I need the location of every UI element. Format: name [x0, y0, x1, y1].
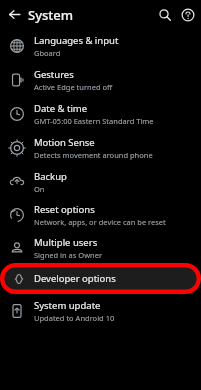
button[interactable]: Date & time [0, 97, 201, 131]
staticText: Gestures [34, 68, 74, 81]
button[interactable]: Languages & input [0, 29, 201, 63]
staticText: Updated to Android 10 [34, 313, 115, 323]
button[interactable]: Developer options [3, 264, 198, 293]
staticText: System update [34, 299, 101, 312]
staticText: Active Edge turned off [34, 82, 113, 92]
staticText: Reset options [34, 203, 95, 216]
button[interactable]: Reset options [0, 198, 201, 232]
staticText: Gboard [34, 48, 61, 58]
button[interactable]: Back [0, 0, 28, 29]
staticText: Date & time [34, 102, 88, 115]
staticText: Languages & input [34, 34, 119, 47]
staticText: GMT-05:00 Eastern Standard Time [34, 116, 154, 126]
staticText: Detects movement around phone [34, 150, 153, 160]
staticText: Backup [34, 170, 67, 183]
button[interactable]: Multiple users [0, 232, 201, 263]
staticText: Developer options [34, 272, 116, 285]
staticText: Signed in as Owner [34, 250, 103, 260]
staticText: Motion Sense [34, 136, 95, 149]
button[interactable]: Search [154, 4, 176, 26]
button[interactable]: Motion Sense [0, 131, 201, 165]
button[interactable]: Gestures [0, 63, 201, 97]
staticText: System [28, 6, 74, 24]
button[interactable]: Backup [0, 165, 201, 198]
staticText: On [34, 184, 45, 194]
staticText: Network, apps, or device can be reset [34, 217, 166, 227]
button[interactable]: Help [177, 4, 199, 26]
button[interactable]: System update [0, 294, 201, 328]
staticText: Multiple users [34, 236, 98, 249]
